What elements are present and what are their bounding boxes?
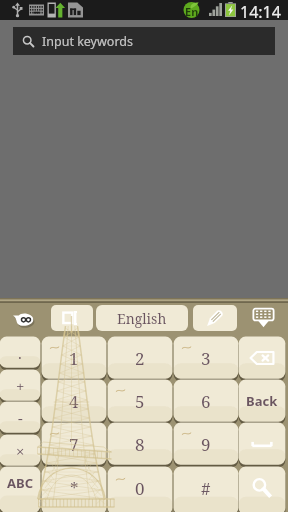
button[interactable]: Input keywords — [13, 27, 275, 55]
button[interactable]: # — [173, 466, 239, 512]
staticText: ABC — [7, 474, 33, 492]
staticText: - — [18, 408, 23, 428]
button[interactable]: Search — [238, 466, 286, 512]
staticText: * — [70, 477, 79, 500]
staticText: Input keywords — [42, 33, 133, 50]
button[interactable]: ABC — [0, 466, 41, 512]
button[interactable]: 7 — [41, 422, 107, 466]
button[interactable]: + — [0, 369, 41, 402]
button[interactable]: Delete — [238, 336, 286, 380]
button[interactable]: × — [0, 434, 41, 467]
staticText: 0 — [135, 477, 145, 500]
button[interactable]: Space — [238, 422, 286, 466]
button[interactable]: Switch input — [51, 305, 93, 331]
button[interactable]: Back — [238, 379, 286, 423]
button[interactable]: 6 — [173, 379, 239, 423]
button[interactable]: . — [0, 336, 41, 369]
staticText: En — [185, 4, 199, 19]
staticText: 1 — [69, 347, 79, 370]
button[interactable]: 4 — [41, 379, 107, 423]
staticText: 8 — [135, 433, 145, 456]
staticText: 6 — [201, 390, 211, 413]
button[interactable]: 8 — [107, 422, 173, 466]
staticText: English — [117, 309, 167, 328]
button[interactable]: Hide keyboard — [252, 307, 275, 328]
button[interactable]: 2 — [107, 336, 173, 380]
staticText: Back — [246, 392, 278, 410]
button[interactable]: Theme — [193, 305, 237, 331]
button[interactable]: GO Keyboard menu — [13, 312, 35, 327]
staticText: 2 — [135, 347, 145, 370]
staticText: 9 — [201, 433, 211, 456]
staticText: 7 — [69, 433, 79, 456]
staticText: + — [16, 376, 25, 396]
staticText: × — [16, 441, 25, 461]
staticText: 5 — [135, 390, 145, 413]
button[interactable]: English — [96, 305, 188, 331]
staticText: 3 — [201, 347, 211, 370]
button[interactable]: 5 — [107, 379, 173, 423]
staticText: 4 — [69, 390, 79, 413]
button[interactable]: 0 — [107, 466, 173, 512]
staticText: . — [18, 343, 22, 363]
button[interactable]: 3 — [173, 336, 239, 380]
button[interactable]: * — [41, 466, 107, 512]
button[interactable]: 1 — [41, 336, 107, 380]
staticText: # — [201, 477, 211, 500]
button[interactable]: - — [0, 401, 41, 434]
button[interactable]: 9 — [173, 422, 239, 466]
staticText: 14:14 — [240, 1, 281, 21]
